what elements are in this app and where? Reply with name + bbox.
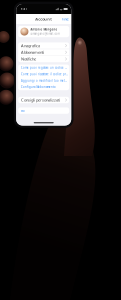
- staticText: a.mangano@email.com: [30, 32, 59, 35]
- button[interactable]: Anagrafica: [18, 42, 69, 49]
- staticText: Aggiungi o modifica il tuo metodo: [21, 79, 68, 82]
- staticText: Anagrafica: [21, 43, 40, 48]
- staticText: Configura l'abbonamento: [21, 85, 56, 89]
- staticText: Notifiche: [21, 56, 36, 62]
- staticText: Come puoi riscattare il codice promo: [21, 72, 68, 76]
- staticText: Esci: [21, 109, 25, 112]
- staticText: Fine: [62, 16, 69, 22]
- staticText: Antonio Mangano: [30, 28, 57, 31]
- button[interactable]: Esci: [18, 107, 69, 114]
- button[interactable]: Aggiungi o modifica il tuo metodo: [18, 77, 69, 84]
- staticText: Come puoi regalare un codice promozional…: [21, 66, 68, 69]
- button[interactable]: Configura l'abbonamento: [18, 84, 69, 90]
- button[interactable]: Consigli personalizzati: [18, 97, 69, 103]
- staticText: 9:41: [21, 7, 28, 11]
- staticText: Abbonamenti: [21, 50, 44, 55]
- button[interactable]: Notifiche: [18, 56, 69, 62]
- button[interactable]: Come puoi regalare un codice promozional…: [18, 65, 69, 71]
- staticText: Consigli personalizzati: [21, 97, 60, 103]
- staticText: Account: [35, 16, 52, 22]
- button[interactable]: Come puoi riscattare il codice promo: [18, 71, 69, 77]
- button[interactable]: Abbonamenti: [18, 49, 69, 55]
- button[interactable]: Fine: [62, 16, 71, 22]
- button[interactable]: Antonio Mangano: [18, 26, 69, 37]
